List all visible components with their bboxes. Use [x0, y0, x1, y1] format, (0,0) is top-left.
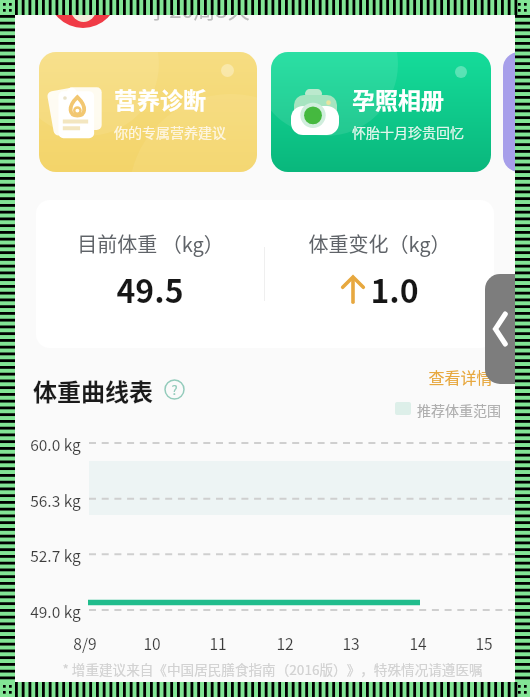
staticText: 8/9 [73, 632, 97, 654]
button[interactable]: 营养诊断 [39, 52, 257, 172]
staticText: 15 [475, 632, 493, 654]
staticText: 49.5 [116, 266, 184, 312]
staticText: 1.0 [370, 266, 419, 312]
staticText: 体重曲线表 [33, 373, 153, 408]
staticText: 12 [276, 632, 294, 654]
button[interactable]: 孕照相册 [271, 52, 491, 172]
staticText: 营养诊断 [114, 82, 206, 115]
button[interactable]: 目前体重 （kg） [36, 200, 264, 348]
staticText: 孕20周3天 [147, 0, 250, 24]
staticText: 孕照相册 [352, 82, 444, 115]
staticText: 10 [143, 632, 161, 654]
staticText: 13 [342, 632, 360, 654]
staticText: 49.0 kg [30, 600, 81, 622]
staticText: 14 [409, 632, 427, 654]
staticText: 你的专属营养建议 [114, 122, 226, 142]
staticText: * 增重建议来自《中国居民膳食指南（2016版）》，特殊情况请遵医嘱 [62, 659, 483, 679]
staticText: 推荐体重范围 [417, 400, 501, 420]
staticText: 目前体重 （kg） [77, 229, 224, 258]
button[interactable]: More [503, 52, 530, 172]
staticText: 体重变化（kg） [308, 229, 451, 258]
button[interactable]: Expand panel [485, 274, 515, 384]
staticText: 怀胎十月珍贵回忆 [352, 122, 464, 142]
staticText: 60.0 kg [30, 433, 81, 455]
button[interactable]: 体重变化（kg） [265, 200, 494, 348]
button[interactable]: 查看详情 [428, 365, 493, 388]
staticText: ? [171, 380, 178, 399]
staticText: 查看详情 [428, 365, 493, 388]
staticText: 52.7 kg [30, 544, 81, 566]
staticText: 56.3 kg [30, 489, 81, 511]
staticText: 11 [209, 632, 227, 654]
